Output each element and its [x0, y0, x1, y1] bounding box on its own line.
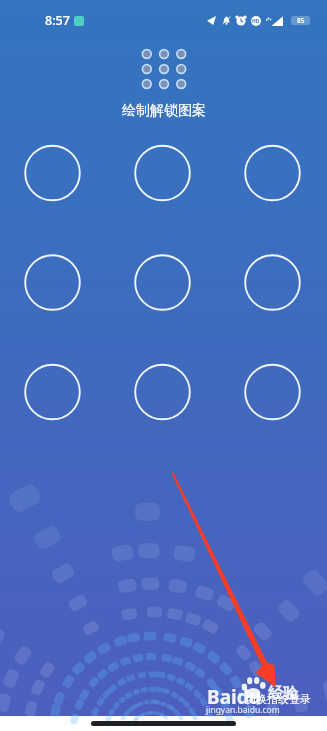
- button[interactable]: Pattern dot: [25, 146, 80, 201]
- staticText: 切换指纹登录: [245, 692, 311, 706]
- button[interactable]: Pattern dot: [245, 146, 300, 201]
- staticText: 绘制解锁图案: [122, 102, 206, 120]
- button[interactable]: Pattern dot: [245, 366, 300, 421]
- button[interactable]: Pattern dot: [135, 256, 190, 311]
- staticText: 85: [297, 16, 305, 25]
- button[interactable]: Pattern dot: [245, 256, 300, 311]
- staticText: 8:57: [45, 12, 70, 29]
- button[interactable]: Pattern dot: [25, 366, 80, 421]
- button[interactable]: 切换指纹登录: [241, 689, 315, 709]
- staticText: 经验: [268, 684, 298, 703]
- button[interactable]: Pattern dot: [135, 366, 190, 421]
- button[interactable]: Pattern dot: [25, 256, 80, 311]
- staticText: HD: [252, 18, 260, 25]
- button[interactable]: Pattern dot: [135, 146, 190, 201]
- staticText: jingyan.baidu.com: [206, 704, 280, 716]
- staticText: Baidu: [207, 684, 262, 710]
